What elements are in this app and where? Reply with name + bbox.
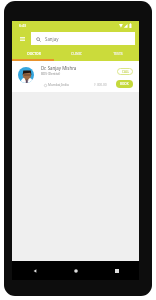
- button[interactable]: TESTS: [97, 45, 139, 61]
- staticText: ₹ 300.00: [94, 83, 107, 87]
- button[interactable]: Back: [30, 266, 39, 275]
- staticText: TESTS: [113, 51, 123, 55]
- button[interactable]: BOOK: [116, 80, 133, 88]
- button[interactable]: Recent apps: [112, 266, 121, 275]
- staticText: CALL: [122, 70, 129, 74]
- staticText: 6:43: [19, 23, 27, 28]
- button[interactable]: Sanjay: [31, 32, 135, 46]
- button[interactable]: DOCTOR: [12, 45, 55, 61]
- staticText: CLINIC: [71, 51, 82, 55]
- button[interactable]: Open navigation menu: [16, 33, 29, 44]
- button[interactable]: CALL: [117, 68, 133, 75]
- staticText: DOCTOR: [27, 51, 41, 55]
- staticText: BDS (Dentist): [41, 72, 61, 76]
- button[interactable]: CLINIC: [55, 45, 97, 61]
- staticText: Mumbai,India: [48, 83, 69, 87]
- button[interactable]: Home: [71, 266, 80, 275]
- staticText: BOOK: [120, 82, 129, 86]
- button[interactable]: Dr. Sanjay Mishra: [12, 61, 139, 92]
- staticText: Sanjay: [45, 36, 59, 42]
- staticText: Dr. Sanjay Mishra: [41, 65, 77, 71]
